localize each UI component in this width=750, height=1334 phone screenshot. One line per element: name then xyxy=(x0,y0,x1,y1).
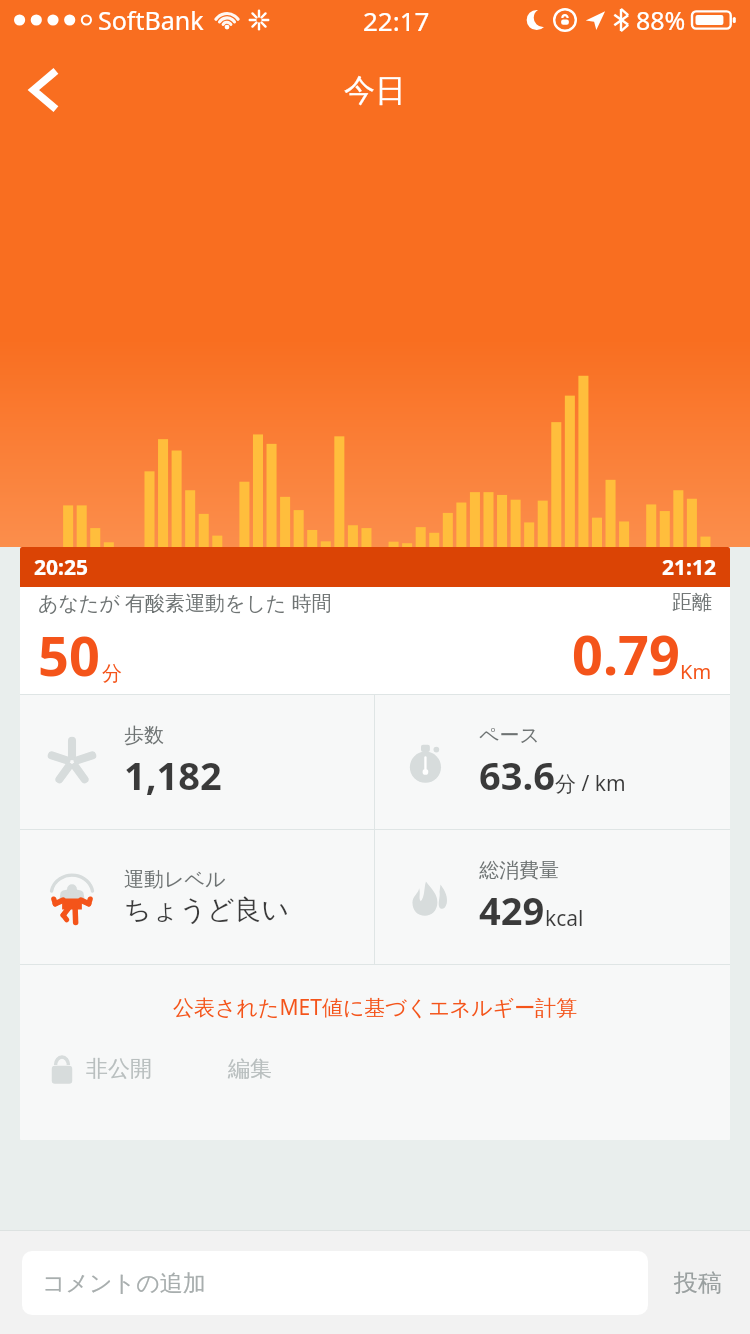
staticText: 公表されたMET値に基づくエネルギー計算 xyxy=(173,993,578,1022)
button[interactable]: 総消費量 xyxy=(375,830,730,964)
button[interactable]: 投稿 xyxy=(648,1268,726,1298)
button[interactable]: 非公開 xyxy=(46,1049,152,1089)
staticText: 21:12 xyxy=(662,553,716,582)
staticText: SoftBank xyxy=(98,3,204,37)
staticText: Km xyxy=(680,658,712,685)
staticText: 運動レベル xyxy=(124,867,226,892)
staticText: 分 xyxy=(102,661,122,686)
staticText: 50 xyxy=(38,618,100,692)
button[interactable]: ペース xyxy=(375,695,730,829)
button[interactable]: 編集 xyxy=(228,1055,272,1083)
staticText: 分 / km xyxy=(555,769,626,798)
staticText: 88% xyxy=(636,3,686,37)
button[interactable]: 運動レベル xyxy=(20,830,374,964)
staticText: 20:25 xyxy=(34,553,88,582)
staticText: 編集 xyxy=(228,1055,272,1083)
staticText: 0.79 xyxy=(572,617,680,691)
staticText: 総消費量 xyxy=(479,858,559,883)
staticText: 1,182 xyxy=(124,749,222,801)
button[interactable]: Back xyxy=(14,61,72,119)
staticText: あなたが 有酸素運動をした 時間 xyxy=(38,589,332,616)
staticText: 429 xyxy=(479,884,545,936)
staticText: 投稿 xyxy=(674,1268,722,1298)
button[interactable]: 公表されたMET値に基づくエネルギー計算 xyxy=(20,965,730,1049)
button[interactable]: 歩数 xyxy=(20,695,374,829)
staticText: コメントの追加 xyxy=(42,1269,206,1298)
staticText: kcal xyxy=(545,904,584,933)
staticText: 63.6 xyxy=(479,749,555,801)
staticText: 22:17 xyxy=(363,3,430,38)
staticText: 距離 xyxy=(672,590,712,615)
staticText: 歩数 xyxy=(124,723,164,748)
staticText: 今日 xyxy=(344,71,406,110)
staticText: 非公開 xyxy=(86,1055,152,1083)
staticText: ペース xyxy=(479,723,540,748)
button[interactable]: コメントの追加 xyxy=(22,1251,648,1315)
staticText: ちょうど良い xyxy=(124,893,290,927)
